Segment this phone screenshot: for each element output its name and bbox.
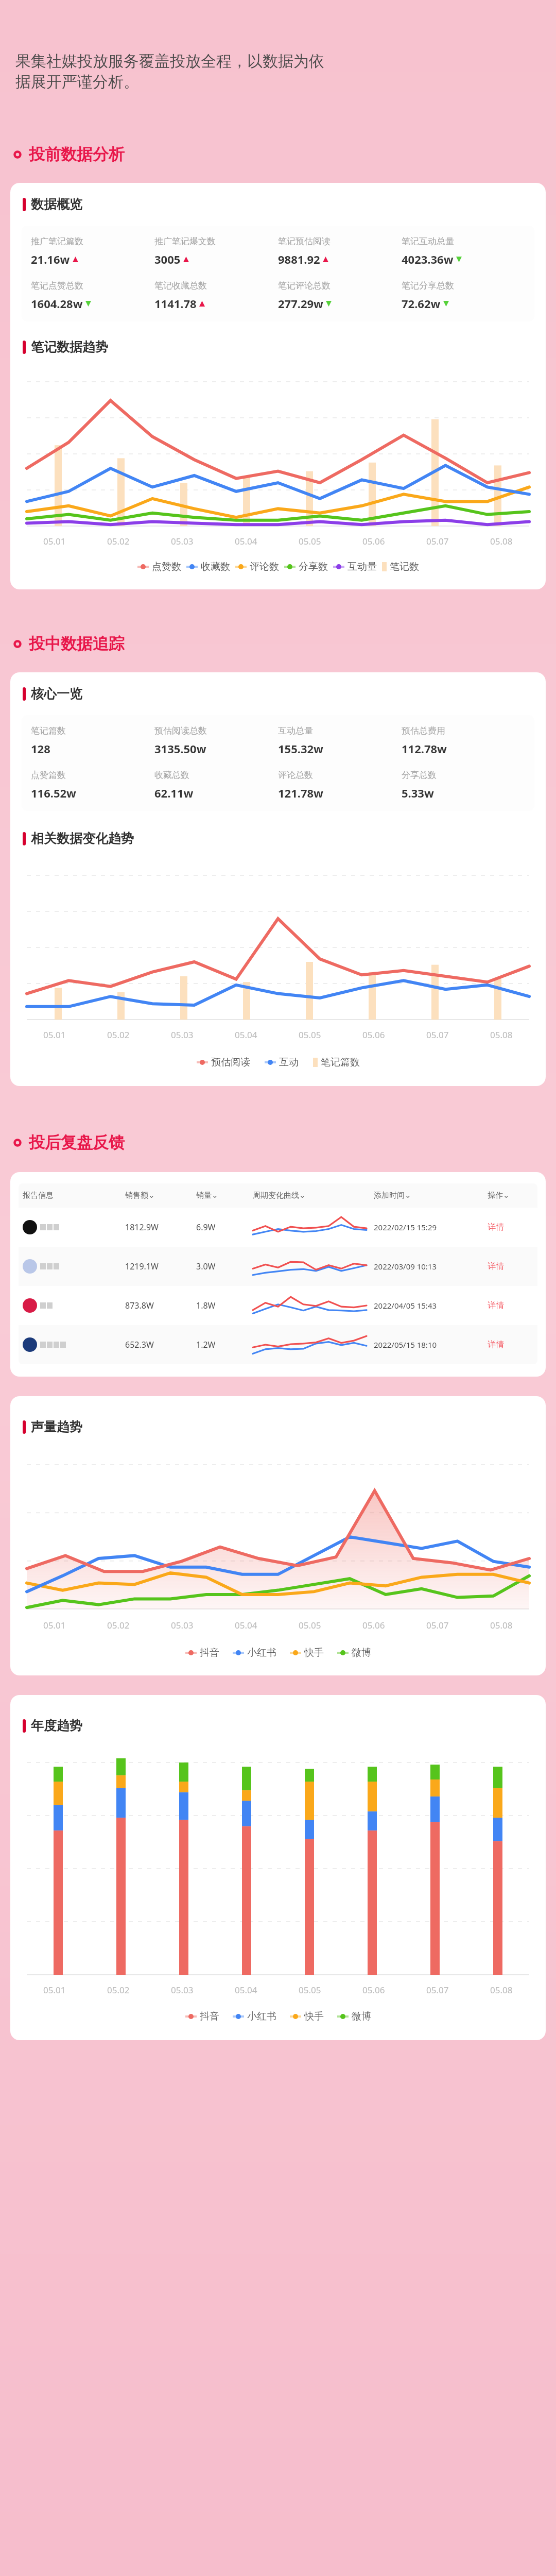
staticText: 05.05 [299, 1619, 321, 1631]
staticText: 05.03 [171, 1619, 194, 1631]
staticText: 1219.1W [125, 1261, 196, 1272]
staticText: 1.8W [196, 1300, 253, 1311]
staticText: 05.02 [107, 1619, 130, 1631]
staticText: 5.33w [402, 785, 434, 801]
staticText: 2022/03/09 10:13 [374, 1261, 488, 1272]
staticText: 112.78w [402, 741, 447, 756]
staticText: 2022/04/05 15:43 [374, 1300, 488, 1311]
button[interactable]: 873.8W [19, 1286, 537, 1325]
staticText: 05.03 [171, 535, 194, 547]
staticText: 操作⌄ [488, 1191, 537, 1200]
staticText: 05.07 [426, 1984, 449, 1996]
staticText: 销售额⌄ [125, 1191, 196, 1200]
button[interactable]: 互动 [265, 1056, 299, 1069]
staticText: 抖音 [200, 2010, 219, 2023]
button[interactable]: 投后复盘反馈 [0, 1132, 556, 1153]
button[interactable]: 互动量 [333, 561, 377, 573]
staticText: 详情 [488, 1222, 504, 1232]
staticText: 销量⌄ [196, 1191, 253, 1200]
staticText: 笔记预估阅读 [278, 236, 331, 247]
button[interactable]: 1812.9W [19, 1208, 537, 1247]
button[interactable]: 快手 [290, 1647, 324, 1659]
staticText: 笔记点赞总数 [31, 280, 83, 291]
button[interactable]: 小红书 [233, 1647, 276, 1659]
staticText: 05.08 [490, 1984, 513, 1996]
staticText: 小红书 [247, 1647, 276, 1659]
staticText: 128 [31, 741, 50, 756]
staticText: 1.2W [196, 1339, 253, 1350]
button[interactable]: 详情 [488, 1300, 537, 1311]
staticText: 预估阅读总数 [154, 725, 207, 736]
button[interactable]: 抖音 [185, 2010, 219, 2023]
staticText: 数据概览 [31, 196, 82, 212]
staticText: 预估阅读 [211, 1056, 250, 1069]
button[interactable]: 详情 [488, 1222, 537, 1232]
button[interactable]: 预估阅读 [197, 1056, 250, 1069]
staticText: 投后复盘反馈 [29, 1132, 125, 1153]
staticText: 4023.36w [402, 251, 454, 267]
staticText: 05.01 [43, 535, 66, 547]
staticText: 05.07 [426, 1619, 449, 1631]
staticText: 互动 [279, 1056, 299, 1069]
staticText: 3135.50w [154, 741, 206, 756]
staticText: 62.11w [154, 785, 194, 801]
staticText: 9881.92 [278, 251, 320, 267]
staticText: 推广笔记爆文数 [154, 236, 216, 247]
staticText: 277.29w [278, 296, 323, 311]
staticText: 分享数 [299, 561, 328, 573]
staticText: 05.06 [362, 1619, 385, 1631]
button[interactable]: 652.3W [19, 1325, 537, 1364]
staticText: 笔记评论总数 [278, 280, 331, 291]
staticText: 05.08 [490, 535, 513, 547]
staticText: 05.06 [362, 535, 385, 547]
button[interactable]: 小红书 [233, 2010, 276, 2023]
staticText: 快手 [304, 1647, 324, 1659]
staticText: 收藏总数 [154, 770, 189, 781]
staticText: 05.05 [299, 1029, 321, 1041]
button[interactable]: 评论数 [235, 561, 279, 573]
staticText: 155.32w [278, 741, 323, 756]
staticText: 笔记篇数 [321, 1056, 360, 1069]
staticText: 05.05 [299, 535, 321, 547]
button[interactable]: 详情 [488, 1261, 537, 1272]
button[interactable]: 笔记篇数 [313, 1056, 360, 1069]
button[interactable]: 收藏数 [186, 561, 230, 573]
staticText: 05.03 [171, 1029, 194, 1041]
button[interactable]: 投前数据分析 [0, 144, 556, 164]
staticText: 05.02 [107, 1984, 130, 1996]
staticText: 分享总数 [402, 770, 437, 781]
staticText: 05.04 [235, 1619, 257, 1631]
staticText: 05.04 [235, 535, 257, 547]
staticText: 微博 [352, 2010, 371, 2023]
button[interactable]: 投中数据追踪 [0, 634, 556, 654]
staticText: 快手 [304, 2010, 324, 2023]
button[interactable]: 快手 [290, 2010, 324, 2023]
button[interactable]: 分享数 [284, 561, 328, 573]
staticText: 推广笔记篇数 [31, 236, 83, 247]
staticText: 2022/02/15 15:29 [374, 1222, 488, 1232]
button[interactable]: 笔记数 [382, 561, 419, 573]
staticText: 笔记分享总数 [402, 280, 454, 291]
button[interactable]: 微博 [337, 1647, 371, 1659]
button[interactable]: 点赞数 [137, 561, 181, 573]
staticText: 互动总量 [278, 725, 313, 736]
button[interactable]: 抖音 [185, 1647, 219, 1659]
staticText: 05.03 [171, 1984, 194, 1996]
staticText: 笔记数 [390, 561, 419, 573]
staticText: 3.0W [196, 1261, 253, 1272]
staticText: 评论数 [250, 561, 279, 573]
staticText: 核心一览 [31, 686, 82, 702]
staticText: 预估总费用 [402, 725, 445, 736]
staticText: 05.01 [43, 1619, 66, 1631]
staticText: 121.78w [278, 785, 323, 801]
staticText: 05.08 [490, 1619, 513, 1631]
staticText: 6.9W [196, 1222, 253, 1233]
staticText: 点赞数 [152, 561, 181, 573]
staticText: 笔记篇数 [31, 725, 66, 736]
button[interactable]: 1219.1W [19, 1247, 537, 1286]
button[interactable]: 微博 [337, 2010, 371, 2023]
staticText: 05.06 [362, 1029, 385, 1041]
staticText: 05.08 [490, 1029, 513, 1041]
staticText: 1812.9W [125, 1222, 196, 1233]
button[interactable]: 详情 [488, 1340, 537, 1350]
